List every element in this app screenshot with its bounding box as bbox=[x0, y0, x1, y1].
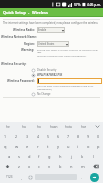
staticText: hota bbox=[65, 125, 72, 129]
button[interactable]: k bbox=[77, 151, 88, 161]
button[interactable]: Shift bbox=[0, 161, 14, 171]
staticText: Incorrect settings may cause interferenc… bbox=[37, 54, 87, 57]
staticText: 1 bbox=[4, 134, 7, 139]
button[interactable]: 1 bbox=[0, 131, 11, 141]
button[interactable]: 7 bbox=[63, 131, 73, 141]
button[interactable]: ha bbox=[16, 122, 31, 131]
button[interactable]: r bbox=[33, 141, 43, 151]
staticText: q bbox=[4, 144, 7, 149]
button[interactable]: h bbox=[55, 151, 66, 161]
staticText: 6 bbox=[57, 134, 60, 139]
button[interactable]: 2 bbox=[11, 131, 22, 141]
button[interactable]: har bbox=[76, 122, 91, 131]
staticText: d bbox=[28, 154, 31, 159]
button[interactable]: 9 bbox=[83, 131, 93, 141]
staticText: Wireless Password: bbox=[7, 79, 35, 83]
button[interactable]: n bbox=[66, 161, 77, 171]
button[interactable]: Change keyboard language bbox=[26, 171, 35, 183]
button[interactable]: c bbox=[34, 161, 44, 171]
staticText: s bbox=[18, 154, 20, 159]
staticText: h bbox=[59, 154, 62, 159]
button[interactable]: w bbox=[11, 141, 22, 151]
staticText: ha bbox=[22, 125, 26, 129]
button[interactable] bbox=[37, 78, 102, 84]
staticText: har bbox=[81, 125, 87, 129]
staticText: ?123 bbox=[6, 175, 13, 179]
button[interactable]: s bbox=[14, 151, 24, 161]
button[interactable]: g bbox=[44, 151, 55, 161]
staticText: 9 bbox=[87, 134, 90, 139]
staticText: , bbox=[21, 175, 22, 180]
button[interactable]: United States bbox=[37, 41, 69, 47]
button[interactable]: 3 bbox=[22, 131, 33, 141]
button[interactable]: 8 bbox=[73, 131, 83, 141]
button[interactable]: q bbox=[0, 141, 11, 151]
staticText: Wireless bbox=[32, 10, 48, 15]
button[interactable]: More suggestions bbox=[91, 122, 103, 131]
staticText: y bbox=[57, 144, 60, 149]
button[interactable]: y bbox=[53, 141, 63, 151]
button[interactable]: 0 bbox=[93, 131, 103, 141]
staticText: w bbox=[15, 144, 19, 149]
staticText: a bbox=[8, 154, 11, 159]
staticText: c bbox=[38, 164, 40, 169]
staticText: 3 bbox=[26, 134, 29, 139]
staticText: g bbox=[48, 154, 51, 159]
button[interactable]: i bbox=[73, 141, 83, 151]
staticText: WPA-PSK/WPA2-PSK bbox=[37, 73, 63, 77]
staticText: 57% bbox=[74, 3, 81, 7]
button[interactable]: t bbox=[43, 141, 53, 151]
staticText: Quick Setup bbox=[3, 10, 26, 15]
button[interactable]: 6 bbox=[53, 131, 63, 141]
staticText: The internet settings have been complete… bbox=[3, 21, 100, 25]
staticText: 2 bbox=[15, 134, 18, 139]
button[interactable]: ho bbox=[31, 122, 46, 131]
button[interactable]: p bbox=[93, 141, 103, 151]
button[interactable]: b bbox=[55, 161, 66, 171]
button[interactable]: No Change bbox=[1, 92, 102, 96]
button[interactable]: m bbox=[77, 161, 88, 171]
staticText: United States bbox=[38, 42, 65, 46]
staticText: k bbox=[81, 154, 84, 159]
button[interactable]: z bbox=[14, 161, 24, 171]
button[interactable]: Enable bbox=[37, 27, 65, 33]
button[interactable]: u bbox=[63, 141, 73, 151]
staticText: Ensure you select a correct country to c… bbox=[37, 48, 102, 54]
staticText: he bbox=[6, 125, 10, 129]
staticText: (You can enter ASCII characters between … bbox=[37, 85, 103, 91]
button[interactable]: f bbox=[34, 151, 44, 161]
button[interactable]: o bbox=[83, 141, 93, 151]
button[interactable]: j bbox=[66, 151, 77, 161]
button[interactable]: l bbox=[88, 151, 99, 161]
button[interactable]: v bbox=[44, 161, 55, 171]
button[interactable]: d bbox=[24, 151, 34, 161]
staticText: o bbox=[87, 144, 90, 149]
button[interactable]: 5 bbox=[43, 131, 53, 141]
staticText: x bbox=[28, 164, 31, 169]
staticText: b bbox=[59, 164, 62, 169]
button[interactable]: 4 bbox=[33, 131, 43, 141]
button[interactable]: e bbox=[22, 141, 33, 151]
staticText: n bbox=[70, 164, 73, 169]
button[interactable]: he bbox=[0, 122, 16, 131]
button[interactable]: haan bbox=[46, 122, 61, 131]
staticText: u bbox=[67, 144, 70, 149]
button[interactable]: WPA-PSK/WPA2-PSK bbox=[1, 73, 102, 77]
button[interactable]: Disable Security bbox=[1, 68, 102, 72]
button[interactable]: x bbox=[24, 161, 34, 171]
button[interactable]: , bbox=[17, 171, 26, 183]
staticText: 5 bbox=[47, 134, 50, 139]
staticText: l bbox=[93, 154, 95, 159]
button[interactable]: hota bbox=[61, 122, 76, 131]
button[interactable]: Backspace bbox=[88, 161, 103, 171]
staticText: p bbox=[97, 144, 100, 149]
button[interactable]: Quick Setup bbox=[0, 8, 103, 17]
staticText: 4:26 p.m. bbox=[87, 3, 101, 7]
staticText: r bbox=[37, 144, 39, 149]
button[interactable]: ?123 bbox=[1, 171, 17, 183]
button[interactable]: Enter bbox=[90, 173, 99, 182]
button[interactable]: a bbox=[4, 151, 14, 161]
staticText: haan bbox=[50, 125, 58, 129]
